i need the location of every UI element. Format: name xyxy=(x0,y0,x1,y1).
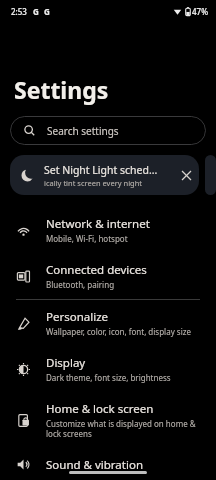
staticText: ically tint screen every night xyxy=(44,178,143,188)
staticText: 47% xyxy=(192,6,208,17)
staticText: Home & lock screen xyxy=(46,401,154,417)
staticText: Dark theme, font size, brightness xyxy=(46,372,171,383)
button[interactable]: Connected devices xyxy=(0,253,216,299)
staticText: G xyxy=(33,6,39,17)
staticText: Settings xyxy=(14,74,109,105)
staticText: Connected devices xyxy=(46,262,147,278)
staticText: Mobile, Wi-Fi, hotspot xyxy=(46,233,128,244)
button[interactable]: More suggestions xyxy=(205,155,216,195)
staticText: Sound & vibration xyxy=(46,457,143,471)
staticText: Bluetooth, pairing xyxy=(46,279,115,290)
staticText: Customize what is displayed on home & lo… xyxy=(46,418,202,439)
button[interactable]: Search settings xyxy=(10,116,206,145)
staticText: G xyxy=(44,6,50,17)
button[interactable]: Dismiss xyxy=(175,164,197,186)
staticText: Set Night Light sched… xyxy=(44,163,158,177)
staticText: Personalize xyxy=(46,309,109,325)
staticText: Search settings xyxy=(47,124,119,138)
staticText: Network & internet xyxy=(46,216,150,232)
button[interactable]: Home & lock screen xyxy=(0,392,216,448)
staticText: Display xyxy=(46,355,86,371)
button[interactable]: Display xyxy=(0,346,216,392)
button[interactable]: Set Night Light sched… xyxy=(10,155,199,195)
staticText: 2:53 xyxy=(11,6,27,17)
button[interactable]: Sound & vibration xyxy=(0,448,216,480)
button[interactable]: Personalize xyxy=(0,300,216,346)
button[interactable]: Network & internet xyxy=(0,207,216,253)
staticText: Wallpaper, color, icon, font, display si… xyxy=(46,326,191,337)
